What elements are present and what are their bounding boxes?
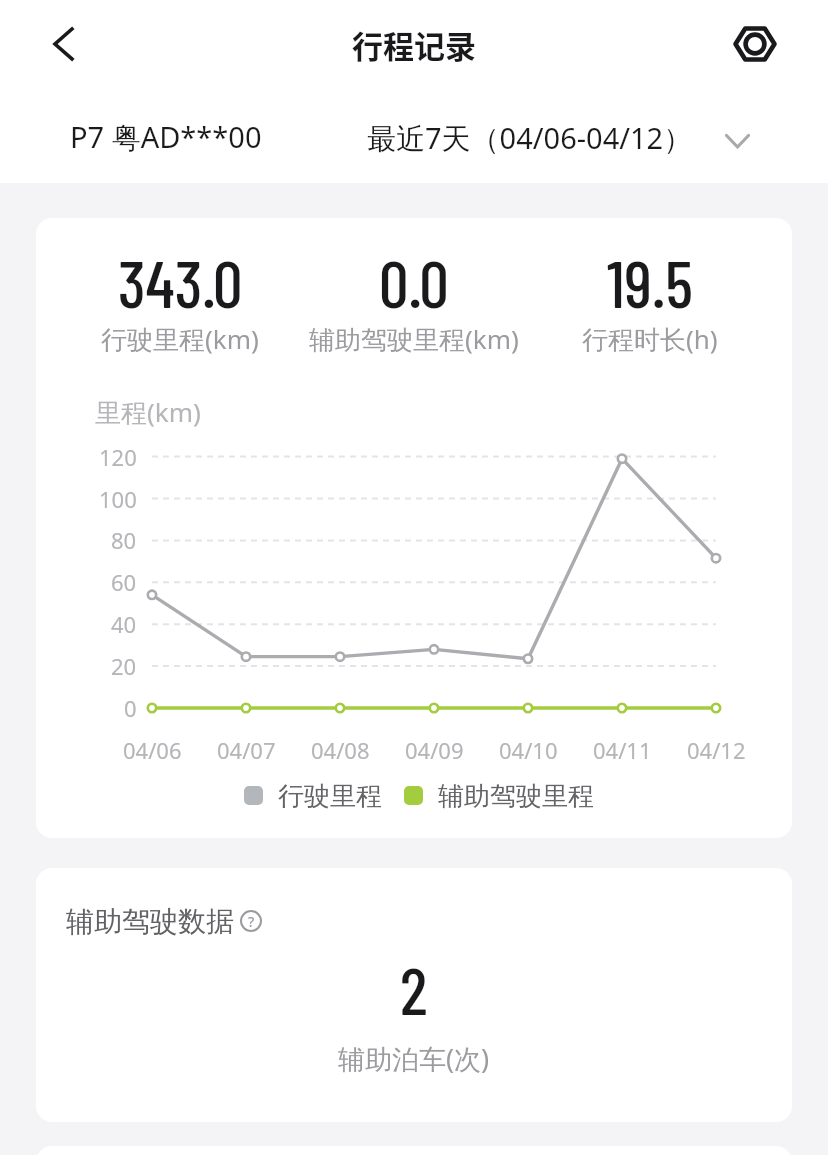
staticText: ? bbox=[248, 912, 255, 931]
staticText: 04/07 bbox=[217, 735, 276, 765]
staticText: 0.0 bbox=[379, 242, 449, 302]
staticText: 04/12 bbox=[687, 735, 746, 765]
button[interactable]: 最近7天（04/06-04/12） bbox=[360, 110, 760, 166]
staticText: 辅助泊车(次) bbox=[338, 1040, 490, 1077]
staticText: 0 bbox=[124, 693, 137, 723]
staticText: 04/06 bbox=[123, 735, 182, 765]
staticText: 里程(km) bbox=[95, 394, 201, 430]
button[interactable] bbox=[38, 19, 88, 69]
staticText: 100 bbox=[99, 484, 137, 514]
staticText: 40 bbox=[111, 609, 137, 639]
staticText: 343.0 bbox=[118, 242, 243, 302]
staticText: 04/10 bbox=[499, 735, 558, 765]
staticText: 辅助驾驶里程 bbox=[438, 780, 594, 813]
staticText: 行驶里程 bbox=[278, 780, 382, 813]
staticText: 2 bbox=[400, 949, 428, 1009]
staticText: 行程记录 bbox=[352, 22, 476, 67]
staticText: 120 bbox=[99, 442, 137, 472]
staticText: 19.5 bbox=[607, 242, 693, 302]
staticText: 20 bbox=[111, 651, 137, 681]
button[interactable] bbox=[731, 20, 779, 68]
staticText: 60 bbox=[111, 567, 137, 597]
staticText: 04/08 bbox=[311, 735, 370, 765]
staticText: P7 粤AD***00 bbox=[70, 117, 262, 157]
staticText: 80 bbox=[111, 525, 137, 555]
staticText: 04/09 bbox=[405, 735, 464, 765]
staticText: 辅助驾驶数据 bbox=[66, 904, 234, 939]
staticText: 04/11 bbox=[593, 735, 652, 765]
staticText: 最近7天（04/06-04/12） bbox=[367, 118, 693, 158]
staticText: 行驶里程(km) bbox=[101, 321, 259, 357]
staticText: 辅助驾驶里程(km) bbox=[309, 321, 519, 357]
staticText: 行程时长(h) bbox=[582, 321, 718, 357]
